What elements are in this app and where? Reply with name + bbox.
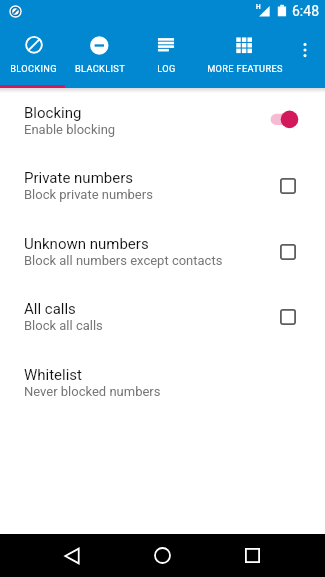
button[interactable]: BLOCKING <box>0 22 67 88</box>
button[interactable]: MORE FEATURES <box>199 22 290 88</box>
button[interactable]: All calls <box>0 284 325 350</box>
staticText: Never blocked numbers <box>24 384 161 399</box>
staticText: Private numbers <box>24 169 133 187</box>
button[interactable]: Private numbers <box>0 153 325 219</box>
staticText: BLOCKING <box>10 63 57 74</box>
staticText: Block all numbers except contacts <box>24 253 223 268</box>
staticText: Block private numbers <box>24 187 153 202</box>
staticText: Enable blocking <box>24 122 116 137</box>
staticText: MORE FEATURES <box>207 63 283 74</box>
staticText: Whitelist <box>24 366 83 384</box>
button[interactable]: LOG <box>133 22 199 88</box>
button[interactable]: Whitelist <box>0 350 325 416</box>
button[interactable]: More options <box>290 22 325 88</box>
button[interactable]: Blocking <box>0 88 325 154</box>
staticText: Block all calls <box>24 318 103 333</box>
button[interactable]: Recents <box>216 534 288 577</box>
staticText: LOG <box>157 63 176 74</box>
button[interactable]: Back <box>36 534 108 577</box>
staticText: BLACKLIST <box>75 63 125 74</box>
button[interactable]: Home <box>126 534 198 577</box>
staticText: Unknown numbers <box>24 235 149 253</box>
button[interactable]: BLACKLIST <box>67 22 133 88</box>
staticText: All calls <box>24 300 76 318</box>
staticText: 6:48 <box>292 3 319 19</box>
staticText: H <box>256 3 261 11</box>
staticText: Blocking <box>24 104 82 122</box>
button[interactable]: Unknown numbers <box>0 219 325 285</box>
